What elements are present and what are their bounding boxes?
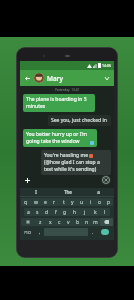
- button[interactable]: You're hassling me: [41, 150, 111, 175]
- button[interactable]: l: [100, 208, 110, 216]
- button[interactable]: h: [70, 208, 80, 216]
- staticText: The: [64, 189, 72, 195]
- button[interactable]: p: [104, 198, 113, 206]
- button[interactable]: r: [50, 198, 59, 206]
- staticText: w: [34, 199, 38, 206]
- button[interactable]: ?1O: [21, 228, 35, 236]
- staticText: k: [94, 209, 97, 216]
- staticText: i: [90, 199, 92, 206]
- staticText: y: [71, 199, 74, 206]
- button[interactable]: d: [42, 208, 51, 216]
- staticText: f: [55, 209, 57, 216]
- button[interactable]: g: [60, 208, 70, 216]
- button[interactable]: More options: [102, 74, 111, 83]
- button[interactable]: See you, just checked in: [48, 115, 111, 126]
- staticText: You better hurry up or I'm going take th…: [26, 131, 89, 145]
- button[interactable]: c: [55, 218, 64, 226]
- staticText: g: [63, 209, 67, 216]
- staticText: e: [44, 199, 47, 206]
- staticText: m: [93, 219, 98, 226]
- staticText: l: [104, 209, 106, 216]
- button[interactable]: You better hurry up or I'm going take th…: [23, 129, 97, 147]
- button[interactable]: Contact photo: [34, 73, 44, 83]
- button[interactable]: Shift: [21, 218, 35, 226]
- staticText: 14:06: [102, 63, 111, 68]
- staticText: a: [97, 189, 100, 195]
- button[interactable]: .: [88, 228, 97, 236]
- staticText: (@how glad I can stop a text while it's …: [44, 159, 108, 173]
- button[interactable]: The: [52, 188, 83, 196]
- staticText: ,: [39, 229, 41, 235]
- staticText: b: [76, 219, 80, 226]
- button[interactable]: s: [33, 208, 42, 216]
- staticText: v: [67, 219, 70, 226]
- staticText: t: [63, 199, 65, 206]
- staticText: x: [49, 219, 52, 226]
- button[interactable]: Backspace: [100, 218, 113, 226]
- button[interactable]: v: [64, 218, 73, 226]
- staticText: z: [39, 219, 42, 226]
- staticText: Yesterday 13:41: [55, 88, 80, 92]
- button[interactable]: k: [90, 208, 100, 216]
- staticText: n: [85, 219, 89, 226]
- staticText: p: [107, 199, 111, 206]
- staticText: d: [45, 209, 49, 216]
- button[interactable]: Back: [23, 74, 32, 83]
- button[interactable]: e: [41, 198, 50, 206]
- button[interactable]: t: [59, 198, 68, 206]
- staticText: ?1O: [24, 230, 32, 235]
- button[interactable]: n: [82, 218, 91, 226]
- staticText: Mary: [47, 74, 63, 83]
- button[interactable]: a: [83, 188, 114, 196]
- button[interactable]: u: [77, 198, 86, 206]
- button[interactable]: Cancel sending: [101, 175, 111, 185]
- staticText: j: [84, 209, 86, 216]
- button[interactable]: i: [86, 198, 95, 206]
- staticText: h: [73, 209, 77, 216]
- button[interactable]: ,: [35, 228, 44, 236]
- button[interactable]: j: [80, 208, 90, 216]
- staticText: s: [36, 209, 39, 216]
- button[interactable]: x: [45, 218, 55, 226]
- button[interactable]: Send: [98, 229, 112, 235]
- button[interactable]: a: [24, 208, 33, 216]
- staticText: o: [98, 199, 102, 206]
- button[interactable]: q: [21, 198, 31, 206]
- button[interactable]: y: [68, 198, 77, 206]
- staticText: The plane is boarding in 5 minutes: [26, 96, 92, 110]
- staticText: See you, just checked in: [51, 117, 108, 124]
- staticText: r: [53, 199, 56, 206]
- button[interactable]: b: [73, 218, 82, 226]
- button[interactable]: m: [91, 218, 100, 226]
- button[interactable]: z: [35, 218, 45, 226]
- staticText: You're hassling me: [44, 152, 88, 159]
- staticText: u: [80, 199, 84, 206]
- staticText: c: [58, 219, 61, 226]
- button[interactable]: The plane is boarding in 5 minutes: [23, 94, 95, 112]
- button[interactable]: I: [20, 188, 52, 196]
- staticText: I: [35, 189, 37, 195]
- staticText: .: [92, 229, 94, 235]
- staticText: q: [24, 199, 28, 206]
- button[interactable]: w: [31, 198, 41, 206]
- button[interactable]: o: [95, 198, 104, 206]
- button[interactable]: f: [51, 208, 60, 216]
- button[interactable]: Attach: [23, 176, 31, 184]
- staticText: a: [27, 209, 30, 216]
